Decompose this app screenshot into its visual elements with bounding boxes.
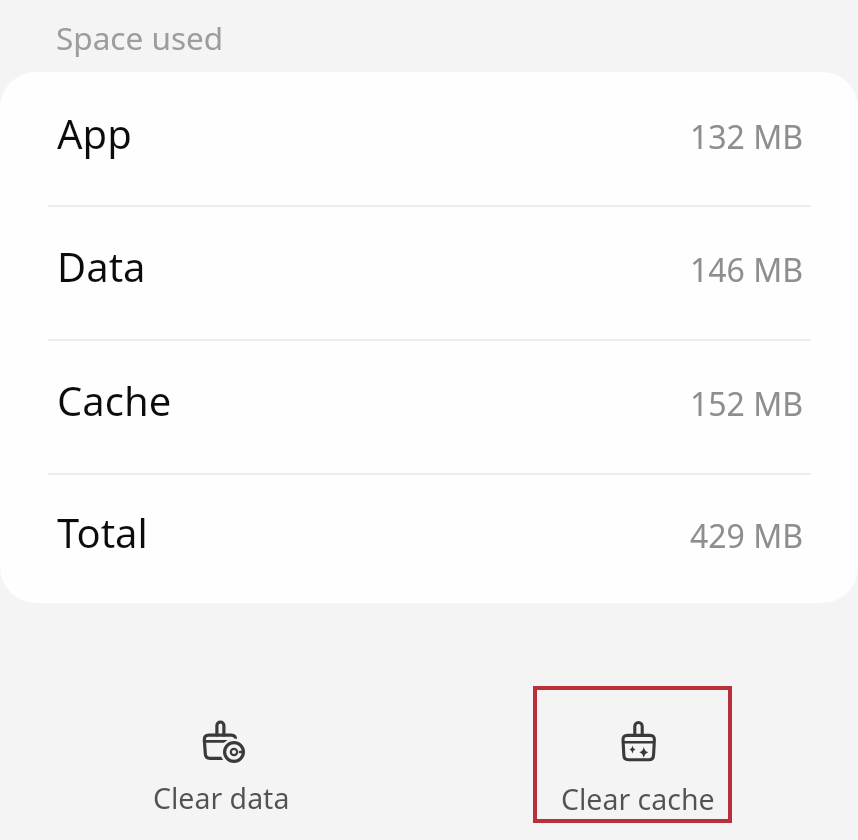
staticText: Total (57, 505, 148, 559)
staticText: Clear data (153, 779, 290, 818)
button[interactable]: Clear data (122, 686, 321, 823)
staticText: 146 MB (690, 248, 804, 292)
staticText: Cache (57, 373, 172, 427)
staticText: 152 MB (690, 382, 804, 426)
button[interactable]: Clear cache (533, 686, 732, 823)
button[interactable]: App (0, 72, 858, 205)
button[interactable]: Data (0, 205, 858, 339)
staticText: Space used (56, 16, 224, 59)
staticText: App (57, 106, 132, 160)
staticText: Data (57, 239, 146, 293)
button[interactable]: Cache (0, 339, 858, 473)
button[interactable]: Total (0, 473, 858, 603)
staticText: Clear cache (561, 780, 715, 819)
staticText: 132 MB (690, 115, 804, 159)
staticText: 429 MB (690, 514, 804, 558)
